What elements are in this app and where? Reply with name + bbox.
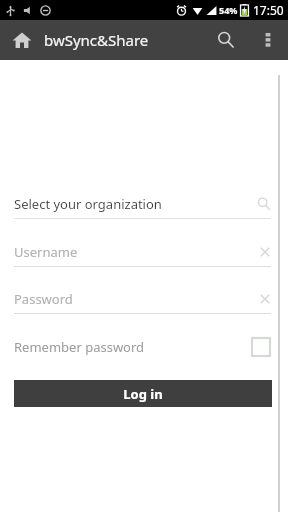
button[interactable]: Home [12, 30, 149, 50]
staticText: bwSync&Share [44, 30, 149, 50]
staticText: Select your organization [14, 195, 162, 213]
button[interactable]: Remember password [14, 331, 271, 363]
staticText: 17:50 [253, 2, 284, 18]
staticText: 54% [219, 4, 238, 16]
staticText: Username [14, 243, 78, 261]
staticText: Log in [123, 385, 163, 403]
button[interactable]: Log in [14, 380, 272, 407]
button[interactable]: Password [14, 288, 271, 314]
button[interactable]: More options [248, 20, 288, 60]
other: Home [12, 30, 32, 50]
button[interactable]: Username [14, 241, 271, 267]
button[interactable]: Select your organization [14, 193, 271, 219]
staticText: Password [14, 290, 73, 308]
staticText: Remember password [14, 338, 145, 356]
button[interactable]: Search [204, 20, 248, 60]
